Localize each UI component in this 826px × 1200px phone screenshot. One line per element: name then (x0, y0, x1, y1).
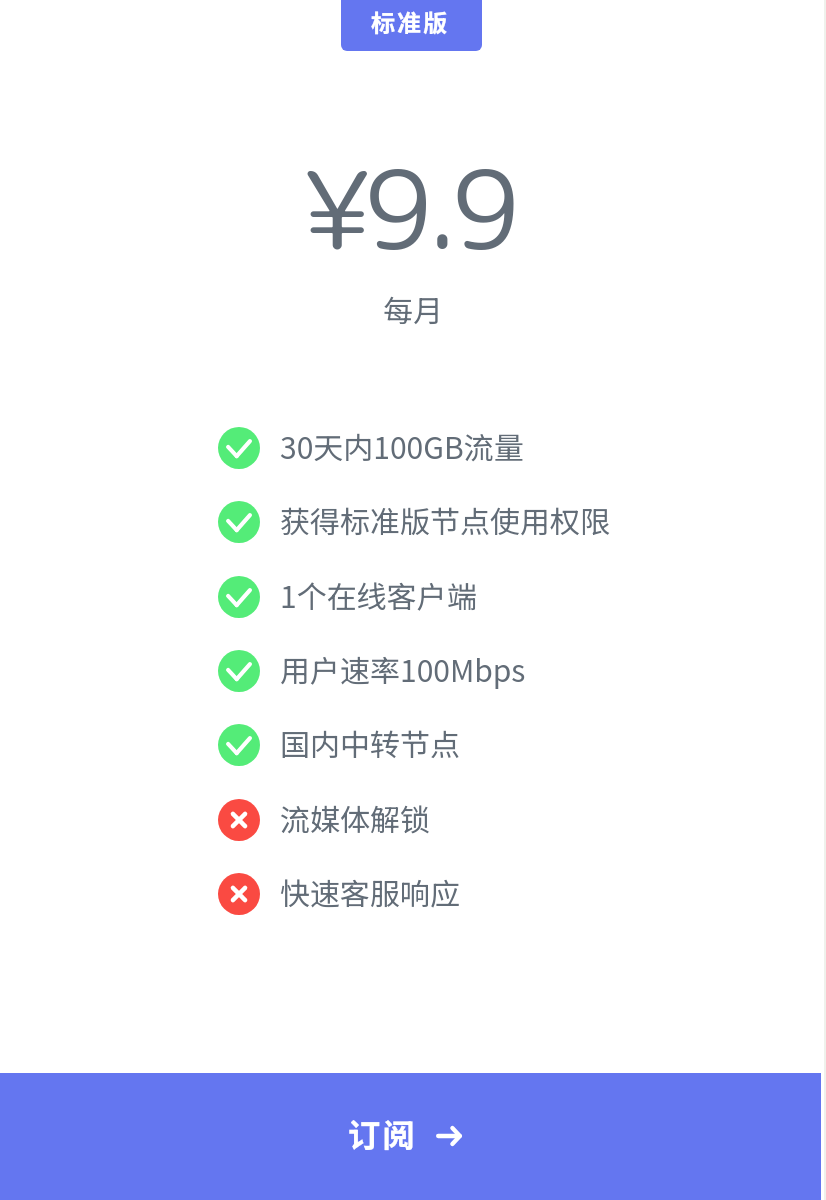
button[interactable]: 订阅 (0, 1073, 821, 1200)
staticText: ¥9.9 (303, 133, 515, 284)
staticText: 获得标准版节点使用权限 (280, 498, 610, 541)
staticText: 流媒体解锁 (280, 796, 430, 839)
other: Subscribe (436, 1127, 462, 1145)
staticText: 快速客服响应 (280, 870, 460, 913)
staticText: 国内中转节点 (280, 721, 460, 764)
staticText: 订阅 (348, 1110, 418, 1156)
staticText: 1个在线客户端 (280, 573, 477, 616)
button[interactable]: 标准版 (341, 0, 482, 51)
staticText: 每月 (383, 287, 443, 330)
staticText: 30天内100GB流量 (280, 424, 524, 467)
button[interactable]: 流媒体解锁 (218, 783, 638, 857)
staticText: 标准版 (371, 4, 449, 39)
button[interactable]: 快速客服响应 (218, 857, 638, 931)
button[interactable]: 1个在线客户端 (218, 560, 638, 634)
button[interactable]: 获得标准版节点使用权限 (218, 485, 638, 559)
button[interactable]: 用户速率100Mbps (218, 634, 638, 708)
button[interactable]: 国内中转节点 (218, 708, 638, 782)
button[interactable]: 30天内100GB流量 (218, 411, 638, 485)
staticText: 用户速率100Mbps (280, 647, 526, 690)
